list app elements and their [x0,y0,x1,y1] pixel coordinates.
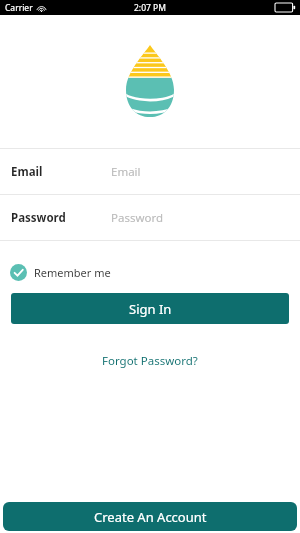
button[interactable]: Password [0,195,300,240]
staticText: Create An Account [94,508,207,526]
staticText: Remember me [34,265,111,280]
button[interactable]: Create An Account [3,502,297,531]
button[interactable]: Sign In [11,293,289,324]
staticText: Email [111,164,141,180]
button[interactable]: Remember me [10,262,111,283]
staticText: Sign In [129,300,172,318]
button[interactable]: Email [0,149,300,194]
staticText: 2:07 PM [134,2,166,14]
staticText: Carrier [5,2,33,14]
staticText: Email [11,164,43,180]
button[interactable]: Forgot Password? [94,350,206,372]
staticText: Forgot Password? [102,353,198,369]
staticText: Password [11,210,66,226]
staticText: Password [111,210,164,226]
